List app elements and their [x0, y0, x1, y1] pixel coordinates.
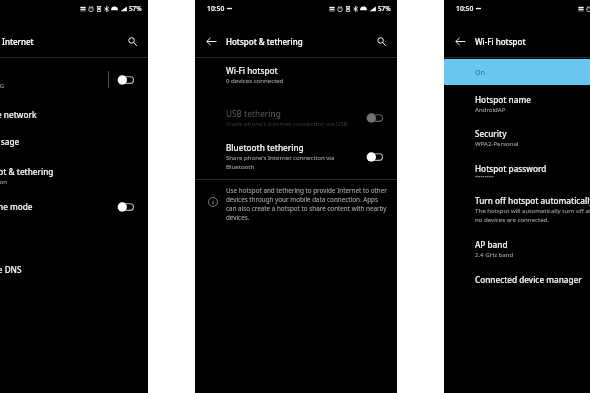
staticText: On [475, 67, 486, 77]
staticText: AndroidAP [475, 105, 506, 113]
button[interactable]: On [444, 59, 590, 85]
staticText: 57% [129, 4, 142, 13]
button[interactable]: Hotspot & tethering [0, 166, 148, 185]
staticText: Hotspot & tethering [0, 166, 54, 177]
staticText: 10:50 [456, 4, 474, 13]
button[interactable]: Bluetooth tethering [195, 142, 397, 171]
button[interactable]: Navigate up [203, 33, 219, 49]
staticText: Hotspot on [0, 177, 7, 185]
button[interactable]: Airplane mode [0, 201, 148, 212]
button[interactable]: Navigate up [452, 33, 468, 49]
button[interactable]: Private DNS [0, 264, 148, 275]
staticText: USB tethering [226, 108, 281, 119]
staticText: Data usage [0, 136, 20, 147]
button[interactable]: Wi-Fi hotspot [195, 65, 397, 84]
staticText: Use hotspot and tethering to provide Int… [226, 186, 389, 222]
button[interactable]: Search settings [125, 34, 140, 49]
staticText: Hotspot & tethering [226, 36, 303, 47]
staticText: 2.4 GHz band [475, 250, 514, 258]
button[interactable]: Search settings [374, 34, 389, 49]
button[interactable]: Connected device manager [444, 274, 590, 285]
staticText: Wi-Fi hotspot [475, 36, 526, 47]
staticText: AP band [475, 239, 508, 250]
staticText: Share phone's Internet connection via US… [226, 119, 348, 127]
staticText: Private DNS [0, 264, 22, 275]
staticText: Share phone's Internet connection via Bl… [226, 153, 355, 171]
button[interactable]: Hotspot password [444, 163, 590, 181]
staticText: Mobile network [0, 109, 37, 120]
button[interactable]: Mobile network [0, 109, 148, 120]
staticText: 0 devices connected [226, 76, 284, 84]
staticText: Bluetooth tethering [226, 142, 304, 153]
staticText: Airplane mode [0, 201, 33, 212]
staticText: •••••••••• [475, 174, 494, 181]
staticText: Security [475, 128, 507, 139]
button[interactable]: Security [444, 128, 590, 147]
staticText: Turn off hotspot automatically [475, 195, 590, 206]
button[interactable]: AP band [444, 239, 590, 258]
staticText: 57% [378, 4, 391, 13]
staticText: Wi-Fi hotspot [226, 65, 278, 76]
staticText: 10:50 [207, 4, 225, 13]
button[interactable]: USB tethering [195, 108, 397, 127]
staticText: Hotspot password [475, 163, 547, 174]
staticText: Connected device manager [475, 274, 582, 285]
button[interactable]: Data usage [0, 136, 148, 147]
button[interactable]: Turn off hotspot automatically [444, 195, 590, 224]
staticText: Network & Internet [0, 36, 34, 47]
button[interactable]: Hotspot name [444, 94, 590, 113]
staticText: WPA2-Personal [475, 139, 519, 147]
staticText: Hotspot name [475, 94, 531, 105]
staticText: The hotspot will automatically turn off … [475, 206, 590, 224]
button[interactable]: Wi-Fi [0, 70, 148, 89]
staticText: Pixel_2.4G [0, 81, 5, 89]
